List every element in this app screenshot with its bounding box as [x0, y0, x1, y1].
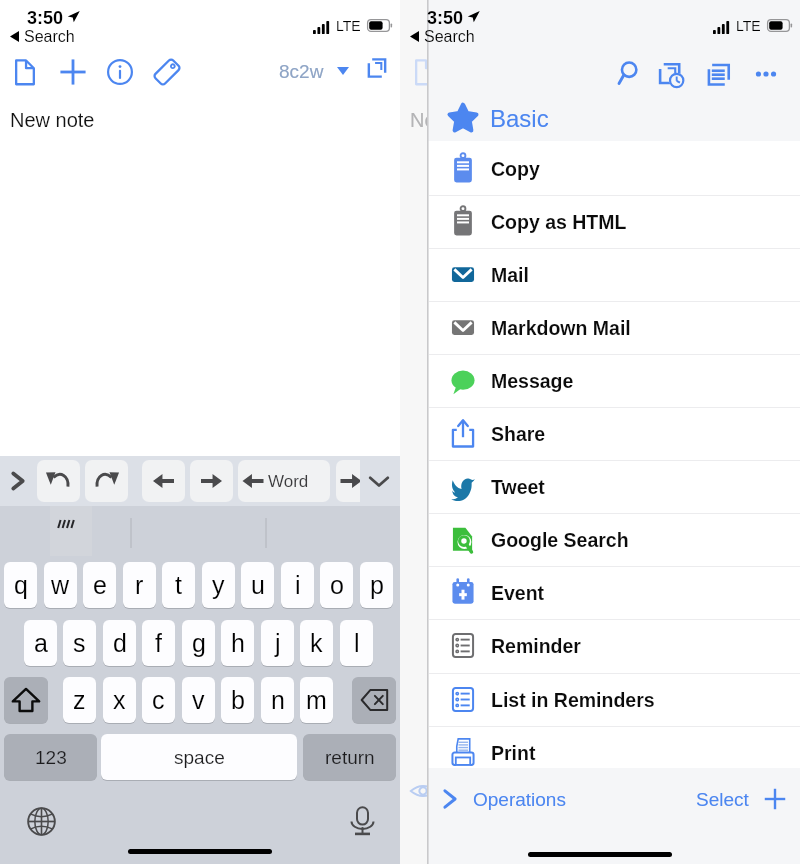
staticText: Print [491, 742, 536, 764]
staticText: 8c2w [279, 61, 324, 82]
button[interactable]: Expand toolbar [2, 465, 34, 497]
button[interactable]: s [63, 620, 96, 666]
staticText: Mail [491, 264, 529, 286]
staticText: h [231, 629, 245, 657]
button[interactable]: u [241, 562, 274, 608]
button[interactable]: j [261, 620, 294, 666]
staticText: Copy as HTML [491, 211, 627, 233]
button[interactable]: Recents [654, 56, 690, 92]
staticText: l [354, 629, 360, 657]
button[interactable]: Operations [435, 780, 566, 818]
button[interactable]: Add [56, 55, 90, 89]
button[interactable]: k [300, 620, 333, 666]
button[interactable]: y [202, 562, 235, 608]
staticText: 3:50 [27, 8, 64, 28]
button[interactable]: Markdown Mail [427, 301, 800, 354]
staticText: u [251, 571, 265, 599]
staticText: f [155, 629, 162, 657]
button[interactable]: v [182, 677, 215, 723]
button[interactable]: Hide keyboard [362, 465, 396, 497]
button[interactable]: Share [427, 407, 800, 460]
staticText: p [370, 571, 384, 599]
button[interactable]: New document [8, 55, 42, 89]
staticText: Operations [473, 789, 566, 810]
button[interactable]: More [748, 56, 784, 92]
staticText: s [73, 629, 86, 657]
button[interactable]: d [103, 620, 136, 666]
button[interactable]: t [162, 562, 195, 608]
button[interactable]: Select [692, 780, 752, 818]
button[interactable]: Message [427, 354, 800, 407]
staticText: c [152, 686, 165, 714]
button[interactable]: Reminder [427, 619, 800, 672]
staticText: i [295, 571, 301, 599]
button[interactable]: redo [85, 460, 128, 502]
button[interactable]: Duplicate [365, 55, 389, 81]
button[interactable]: w [44, 562, 77, 608]
button[interactable]: List in Reminders [427, 673, 800, 726]
button[interactable]: r [123, 562, 156, 608]
button[interactable]: Tweet [427, 460, 800, 513]
button[interactable]: g [182, 620, 215, 666]
staticText: space [174, 747, 225, 768]
button[interactable]: Print [427, 726, 800, 779]
button[interactable]: q [4, 562, 37, 608]
staticText: q [14, 571, 28, 599]
button[interactable]: z [63, 677, 96, 723]
button[interactable]: Change language [27, 807, 56, 836]
button[interactable]: left word [238, 460, 330, 502]
staticText: Event [491, 582, 545, 604]
staticText: j [275, 629, 281, 657]
button[interactable]: f [142, 620, 175, 666]
button[interactable]: 123 [4, 734, 97, 780]
button[interactable]: Add [759, 780, 791, 818]
button[interactable]: Tag [150, 55, 184, 89]
button[interactable]: i [281, 562, 314, 608]
staticText: Select [696, 789, 749, 810]
staticText: m [306, 686, 327, 714]
button[interactable]: 8c2w [279, 54, 349, 88]
button[interactable]: Documents [701, 56, 737, 92]
staticText: List in Reminders [491, 689, 655, 711]
button[interactable]: Info [103, 55, 137, 89]
button[interactable]: Search [609, 56, 645, 92]
button[interactable]: Dictate [350, 806, 375, 837]
button[interactable]: h [221, 620, 254, 666]
button[interactable]: Copy as HTML [427, 195, 800, 248]
staticText: d [113, 629, 127, 657]
button[interactable]: Copy [427, 142, 800, 195]
button[interactable]: a [24, 620, 57, 666]
staticText: return [325, 747, 375, 768]
staticText: n [271, 686, 285, 714]
button[interactable]: e [83, 562, 116, 608]
button[interactable]: o [320, 562, 353, 608]
button[interactable]: right word [336, 460, 428, 502]
button[interactable]: Search [10, 28, 75, 45]
button[interactable]: m [300, 677, 333, 723]
button[interactable]: right [190, 460, 233, 502]
button[interactable]: x [103, 677, 136, 723]
button[interactable]: undo [37, 460, 80, 502]
button[interactable]: Backspace [352, 677, 396, 723]
button[interactable]: left [142, 460, 185, 502]
staticText: a [34, 629, 48, 657]
button[interactable]: l [340, 620, 373, 666]
staticText: r [135, 571, 144, 599]
button[interactable]: Search [410, 28, 475, 45]
button[interactable]: b [221, 677, 254, 723]
button[interactable]: p [360, 562, 393, 608]
staticText: w [51, 571, 70, 599]
button[interactable]: return [303, 734, 396, 780]
button[interactable]: Basic [427, 95, 800, 141]
button[interactable]: n [261, 677, 294, 723]
staticText: 123 [35, 747, 67, 768]
button[interactable]: space [101, 734, 297, 780]
button[interactable]: Mail [427, 248, 800, 301]
staticText: Search [24, 28, 75, 45]
button[interactable]: Event [427, 566, 800, 619]
button[interactable]: Shift [4, 677, 48, 723]
button[interactable]: Google Search [427, 513, 800, 566]
button[interactable]: c [142, 677, 175, 723]
staticText: t [175, 571, 182, 599]
staticText: x [113, 686, 126, 714]
